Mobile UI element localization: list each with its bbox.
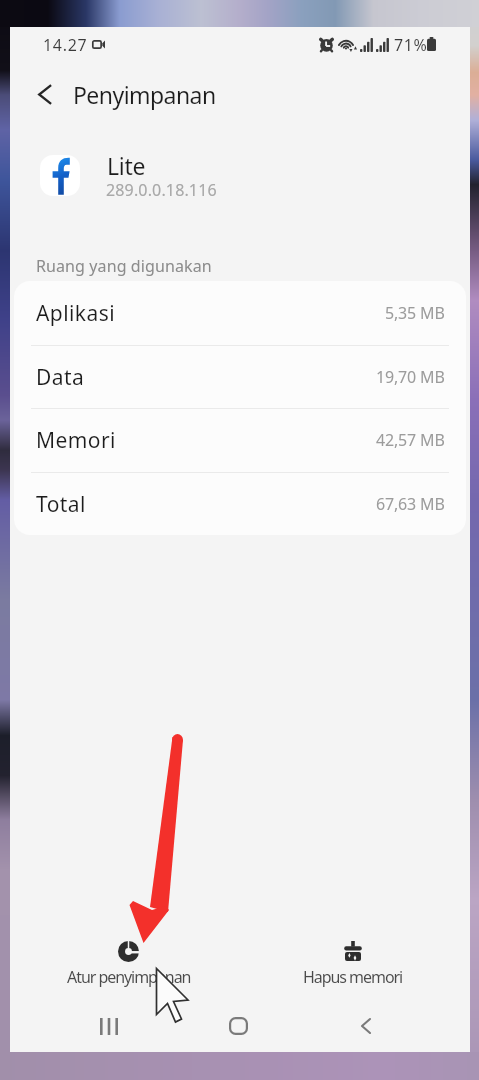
staticText: 5,35 MB [385, 302, 445, 324]
staticText: Data [36, 363, 85, 392]
staticText: Lite [107, 150, 146, 181]
staticText: 289.0.0.18.116 [106, 179, 217, 201]
staticText: Hapus memori [303, 966, 403, 988]
staticText: Penyimpanan [73, 79, 216, 110]
staticText: 71% [394, 34, 428, 56]
staticText: 14.27 [43, 34, 88, 56]
staticText: 42,57 MB [376, 429, 445, 451]
staticText: Atur penyimpanan [67, 966, 191, 988]
button[interactable]: Data [14, 345, 466, 409]
button[interactable]: Total [14, 472, 466, 535]
button[interactable]: Back [24, 74, 64, 114]
button[interactable]: Memori [14, 408, 466, 472]
staticText: 67,63 MB [376, 493, 445, 515]
staticText: Ruang yang digunakan [36, 255, 212, 277]
button[interactable]: Atur penyimpanan [10, 925, 247, 1000]
button[interactable]: Aplikasi [14, 281, 466, 345]
button[interactable]: Home [198, 1006, 278, 1046]
staticText: Aplikasi [36, 299, 116, 328]
button[interactable]: Back [326, 1006, 406, 1046]
button[interactable]: Recent apps [69, 1006, 149, 1046]
button[interactable]: Hapus memori [247, 925, 459, 1000]
staticText: 19,70 MB [376, 366, 445, 388]
staticText: Memori [36, 426, 116, 455]
staticText: Total [36, 490, 86, 519]
